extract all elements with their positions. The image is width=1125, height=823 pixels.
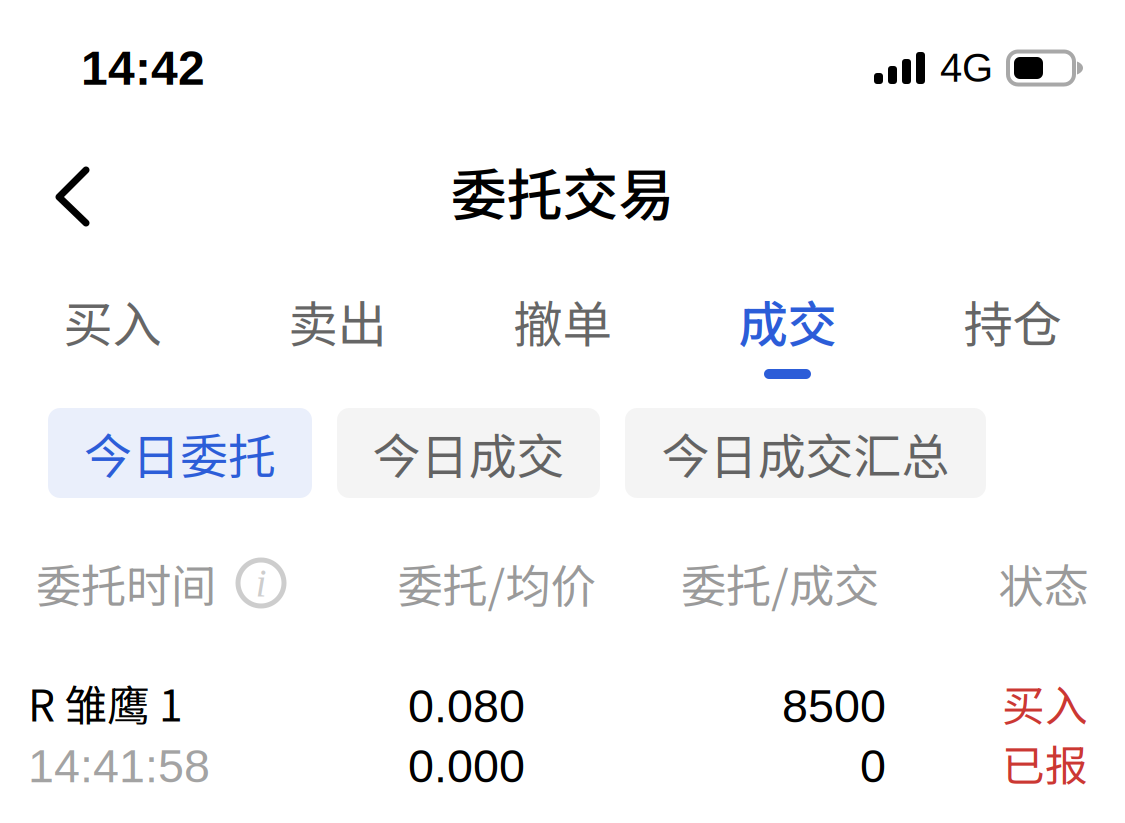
staticText: 14:41:58 (28, 740, 210, 792)
staticText: 14:42 (81, 41, 205, 95)
staticText: 委托交易 (450, 150, 674, 232)
button[interactable]: 成交 (675, 258, 900, 390)
staticText: 委托时间 (36, 550, 216, 616)
button[interactable]: 持仓 (900, 258, 1125, 390)
staticText: 今日成交 (372, 418, 564, 488)
staticText: i (255, 561, 266, 605)
staticText: 委托/均价 (397, 550, 595, 616)
staticText: 4G (940, 46, 993, 90)
staticText: 8500 (782, 680, 886, 732)
staticText: 今日成交汇总 (661, 418, 949, 488)
button[interactable]: R 雏鹰 1 (0, 650, 1125, 823)
button[interactable]: 今日成交 (337, 408, 600, 498)
staticText: 撤单 (513, 285, 611, 357)
button[interactable]: 撤单 (450, 258, 675, 390)
staticText: 买入 (63, 285, 161, 357)
staticText: 今日委托 (84, 418, 276, 488)
staticText: 0.080 (408, 680, 525, 732)
staticText: 状态 (998, 550, 1088, 616)
button[interactable]: Back (0, 130, 140, 258)
staticText: 委托/成交 (681, 550, 879, 616)
button[interactable]: 今日成交汇总 (625, 408, 986, 498)
staticText: 0 (860, 740, 886, 792)
staticText: 已报 (1002, 732, 1088, 794)
button[interactable]: About order time (216, 560, 284, 606)
staticText: 成交 (738, 285, 836, 357)
button[interactable]: 卖出 (225, 258, 450, 390)
button[interactable]: 买入 (0, 258, 225, 390)
staticText: 卖出 (288, 285, 386, 357)
staticText: 持仓 (963, 285, 1061, 357)
button[interactable]: 今日委托 (48, 408, 312, 498)
staticText: R 雏鹰 1 (28, 672, 183, 734)
staticText: 买入 (1002, 672, 1088, 734)
staticText: 0.000 (408, 740, 525, 792)
